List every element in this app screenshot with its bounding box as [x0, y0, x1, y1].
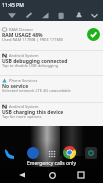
button[interactable]: Camera	[85, 147, 97, 159]
staticText: No service	[2, 83, 29, 90]
staticText: Selected network LTE 4G unavailable	[2, 88, 71, 93]
staticText: Tap to disable USB debugging	[2, 63, 59, 68]
staticText: Tap for more options	[2, 114, 42, 119]
button[interactable]: Android System	[0, 102, 103, 126]
button[interactable]: Android System	[0, 50, 103, 75]
staticText: RAM USAGE 48%	[2, 32, 43, 39]
button[interactable]: Chrome	[63, 146, 76, 159]
staticText: Android System	[9, 104, 39, 109]
staticText: Emergency calls only	[27, 160, 76, 167]
button[interactable]: Phone Services	[0, 75, 103, 102]
staticText: RAM Cleaner	[9, 27, 34, 32]
staticText: USB charging this device	[2, 109, 64, 116]
button[interactable]: Apps	[47, 149, 57, 159]
button[interactable]: Recents	[73, 167, 89, 183]
button[interactable]: Back	[14, 167, 30, 183]
staticText: Used RAM 117MB | FREE 171MB	[2, 37, 63, 42]
staticText: Android System	[9, 53, 39, 58]
staticText: USB debugging connected	[2, 58, 68, 65]
button[interactable]: Messages	[27, 147, 39, 159]
staticText: Phone Services	[9, 78, 38, 83]
button[interactable]: Phone	[2, 147, 15, 160]
button[interactable]: Clean memory	[87, 28, 100, 41]
staticText: 11:45 PM	[2, 2, 24, 9]
button[interactable]: Home	[44, 167, 60, 183]
button[interactable]: RAM Cleaner	[0, 21, 103, 50]
